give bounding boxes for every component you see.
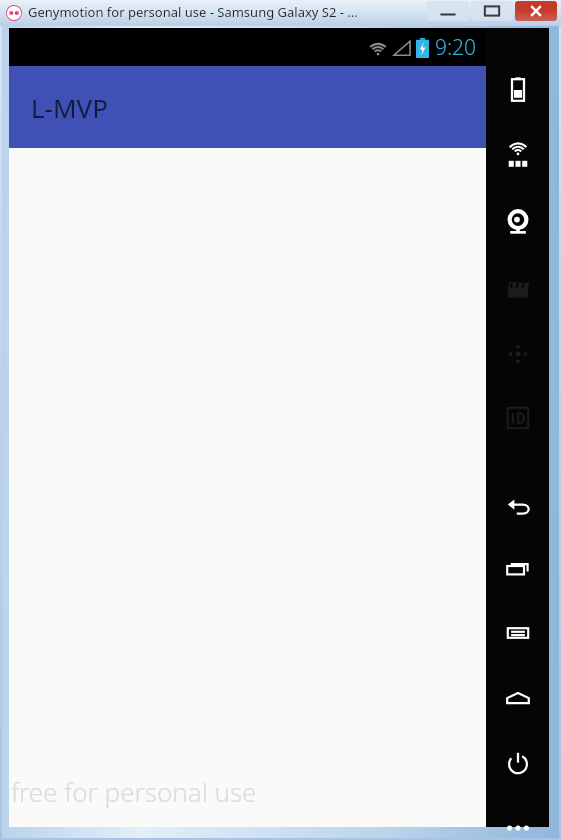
button[interactable]: GPS <box>486 136 549 176</box>
staticText: Genymotion for personal use - Samsung Ga… <box>28 3 358 21</box>
button[interactable]: Camera <box>486 202 549 242</box>
button[interactable]: Recent apps <box>486 549 549 589</box>
button[interactable]: Video recording <box>486 268 549 308</box>
button[interactable]: Power <box>486 743 549 783</box>
staticText: L-MVP <box>31 90 108 125</box>
button[interactable]: Identifiers <box>486 398 549 438</box>
button[interactable]: Menu <box>486 613 549 653</box>
staticText: 9:20 <box>435 33 477 62</box>
button[interactable]: More options <box>486 808 549 840</box>
button[interactable]: Close <box>515 1 557 21</box>
button[interactable]: Home <box>486 679 549 719</box>
button[interactable]: Minimize <box>427 1 469 21</box>
button[interactable]: Back <box>486 484 549 524</box>
button[interactable]: Battery <box>486 70 549 110</box>
button[interactable]: L-MVP <box>9 66 486 148</box>
button[interactable]: Accelerometer <box>486 334 549 374</box>
staticText: free for personal use <box>11 774 257 809</box>
button[interactable]: Maximize <box>471 1 513 21</box>
